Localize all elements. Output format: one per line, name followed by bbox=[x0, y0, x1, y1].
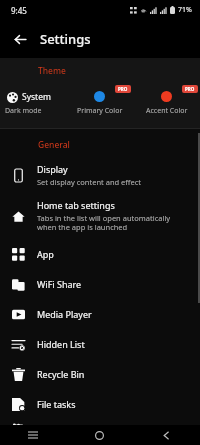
staticText: Primary Color bbox=[77, 106, 123, 116]
staticText: 9:45 bbox=[11, 5, 27, 16]
button[interactable]: Home bbox=[66, 425, 133, 445]
button[interactable]: Recycle Bin bbox=[0, 359, 200, 389]
staticText: Tabs in the list will open automatically… bbox=[37, 213, 190, 233]
button[interactable]: Recents bbox=[0, 425, 66, 445]
staticText: Hidden List bbox=[37, 338, 85, 350]
staticText: App bbox=[37, 248, 54, 260]
staticText: 71% bbox=[178, 5, 192, 15]
button[interactable]: Primary Color bbox=[66, 84, 133, 122]
button[interactable]: Back bbox=[6, 25, 34, 53]
staticText: PRO bbox=[185, 86, 195, 92]
staticText: Media Player bbox=[37, 308, 92, 320]
button[interactable]: WiFi Share bbox=[0, 269, 200, 299]
staticText: System bbox=[22, 91, 51, 103]
staticText: Settings bbox=[40, 30, 91, 48]
staticText: File tasks bbox=[37, 398, 76, 410]
button[interactable]: Media Player bbox=[0, 299, 200, 329]
staticText: Home tab settings bbox=[37, 199, 115, 211]
staticText: General bbox=[38, 139, 70, 151]
staticText: Accent Color bbox=[146, 106, 188, 116]
button[interactable]: Back bbox=[133, 425, 200, 445]
staticText: PRO bbox=[118, 86, 128, 92]
staticText: Recycle Bin bbox=[37, 368, 85, 380]
staticText: Set display content and effect bbox=[37, 177, 142, 187]
button[interactable]: Accent Color bbox=[133, 84, 200, 122]
button[interactable]: Hidden List bbox=[0, 329, 200, 359]
staticText: Display bbox=[37, 163, 68, 175]
button[interactable]: App bbox=[0, 239, 200, 269]
staticText: Dark mode bbox=[5, 106, 42, 116]
button[interactable]: Home tab settings bbox=[0, 193, 200, 239]
button[interactable]: File tasks bbox=[0, 389, 200, 419]
button[interactable]: Display bbox=[0, 157, 200, 193]
staticText: Theme bbox=[38, 65, 66, 77]
button[interactable]: System bbox=[0, 84, 66, 122]
button[interactable]: Respond to connected USB devices bbox=[0, 419, 200, 425]
staticText: WiFi Share bbox=[37, 278, 82, 290]
